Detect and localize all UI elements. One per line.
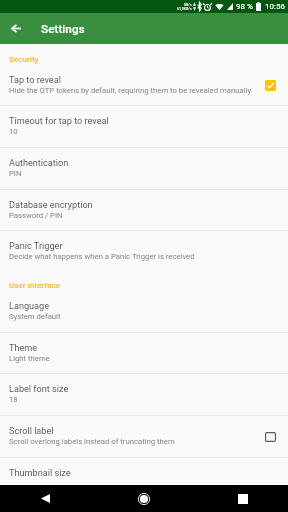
staticText: Scroll label xyxy=(9,426,54,437)
staticText: 18 xyxy=(9,395,18,404)
staticText: Panic Trigger xyxy=(9,241,63,252)
button[interactable]: Panic Trigger xyxy=(0,231,288,272)
button[interactable]: Home xyxy=(120,485,168,512)
button[interactable]: Tap to reveal xyxy=(0,65,288,105)
staticText: 61,9KB/s xyxy=(177,7,192,11)
button[interactable]: Scroll label, disabled xyxy=(265,432,276,442)
staticText: 10 xyxy=(9,127,18,136)
button[interactable]: Authentication xyxy=(0,148,288,189)
staticText: Language xyxy=(9,301,50,312)
staticText: Settings xyxy=(41,22,85,36)
staticText: Password / PIN xyxy=(9,211,63,220)
staticText: Authentication xyxy=(9,158,69,169)
staticText: 10:56 xyxy=(265,2,285,11)
button[interactable]: Back xyxy=(21,485,69,512)
staticText: Tap to reveal xyxy=(9,75,61,86)
button[interactable]: Scroll label xyxy=(0,416,288,457)
staticText: 98 % xyxy=(236,2,253,11)
staticText: 0B/s xyxy=(184,3,192,7)
staticText: Hide the OTP tokens by default, requirin… xyxy=(9,86,252,95)
button[interactable]: Tap to reveal, enabled xyxy=(265,80,276,91)
staticText: Light theme xyxy=(9,354,50,363)
staticText: Label font size xyxy=(9,384,69,395)
button[interactable]: Database encryption xyxy=(0,190,288,230)
staticText: Scroll overlong labels instead of trunca… xyxy=(9,437,175,446)
button[interactable]: Navigate up xyxy=(0,13,31,44)
button[interactable]: Theme xyxy=(0,333,288,373)
staticText: Timeout for tap to reveal xyxy=(9,116,109,127)
staticText: Security xyxy=(9,54,39,63)
button[interactable]: Thumbnail size xyxy=(0,458,288,485)
staticText: System default xyxy=(9,312,61,321)
button[interactable]: Language xyxy=(0,291,288,332)
staticText: Thumbnail size xyxy=(9,468,71,479)
staticText: User interface xyxy=(9,280,61,289)
staticText: Decide what happens when a Panic Trigger… xyxy=(9,252,195,261)
button[interactable]: Label font size xyxy=(0,374,288,415)
staticText: Database encryption xyxy=(9,200,93,211)
button[interactable]: Recent apps xyxy=(219,485,267,512)
staticText: PIN xyxy=(9,169,22,178)
staticText: Theme xyxy=(9,343,38,354)
button[interactable]: Timeout for tap to reveal xyxy=(0,106,288,147)
